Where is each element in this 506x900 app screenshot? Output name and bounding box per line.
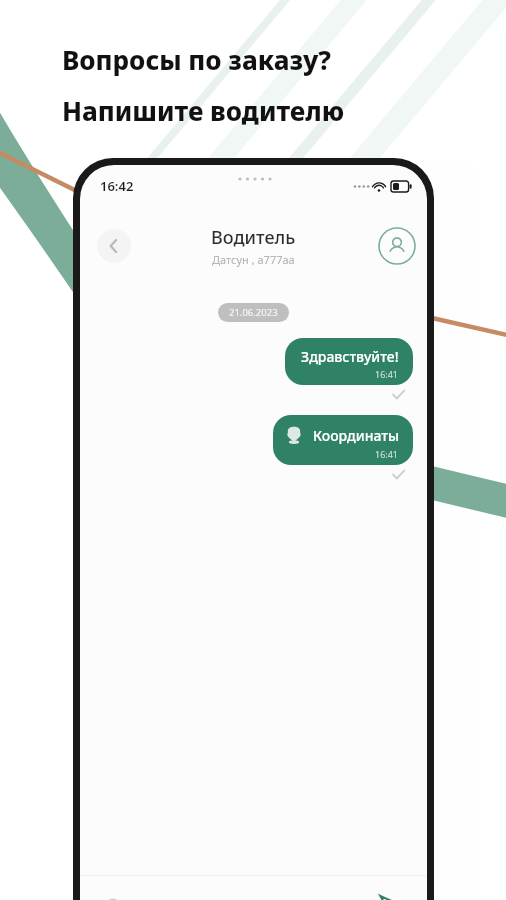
staticText: 16:42	[100, 177, 134, 195]
staticText: Водитель	[211, 225, 296, 250]
staticText: 16:41	[375, 448, 399, 460]
button[interactable]: Back	[97, 229, 131, 263]
button[interactable]: Здравствуйте!	[285, 338, 413, 385]
staticText: Здравствуйте!	[301, 347, 399, 366]
button[interactable]: Координаты	[273, 415, 413, 465]
staticText: Напишите водителю	[62, 93, 345, 128]
staticText: 16:41	[375, 368, 399, 380]
staticText: Вопросы по заказу?	[62, 42, 331, 77]
staticText: Координаты	[313, 426, 399, 445]
staticText: 21.06.2023	[229, 306, 278, 319]
staticText: Датсун , а777аа	[212, 252, 295, 267]
button[interactable]: Profile	[378, 227, 416, 265]
button[interactable]: Send	[373, 888, 411, 900]
button[interactable]: Send location	[96, 890, 130, 900]
